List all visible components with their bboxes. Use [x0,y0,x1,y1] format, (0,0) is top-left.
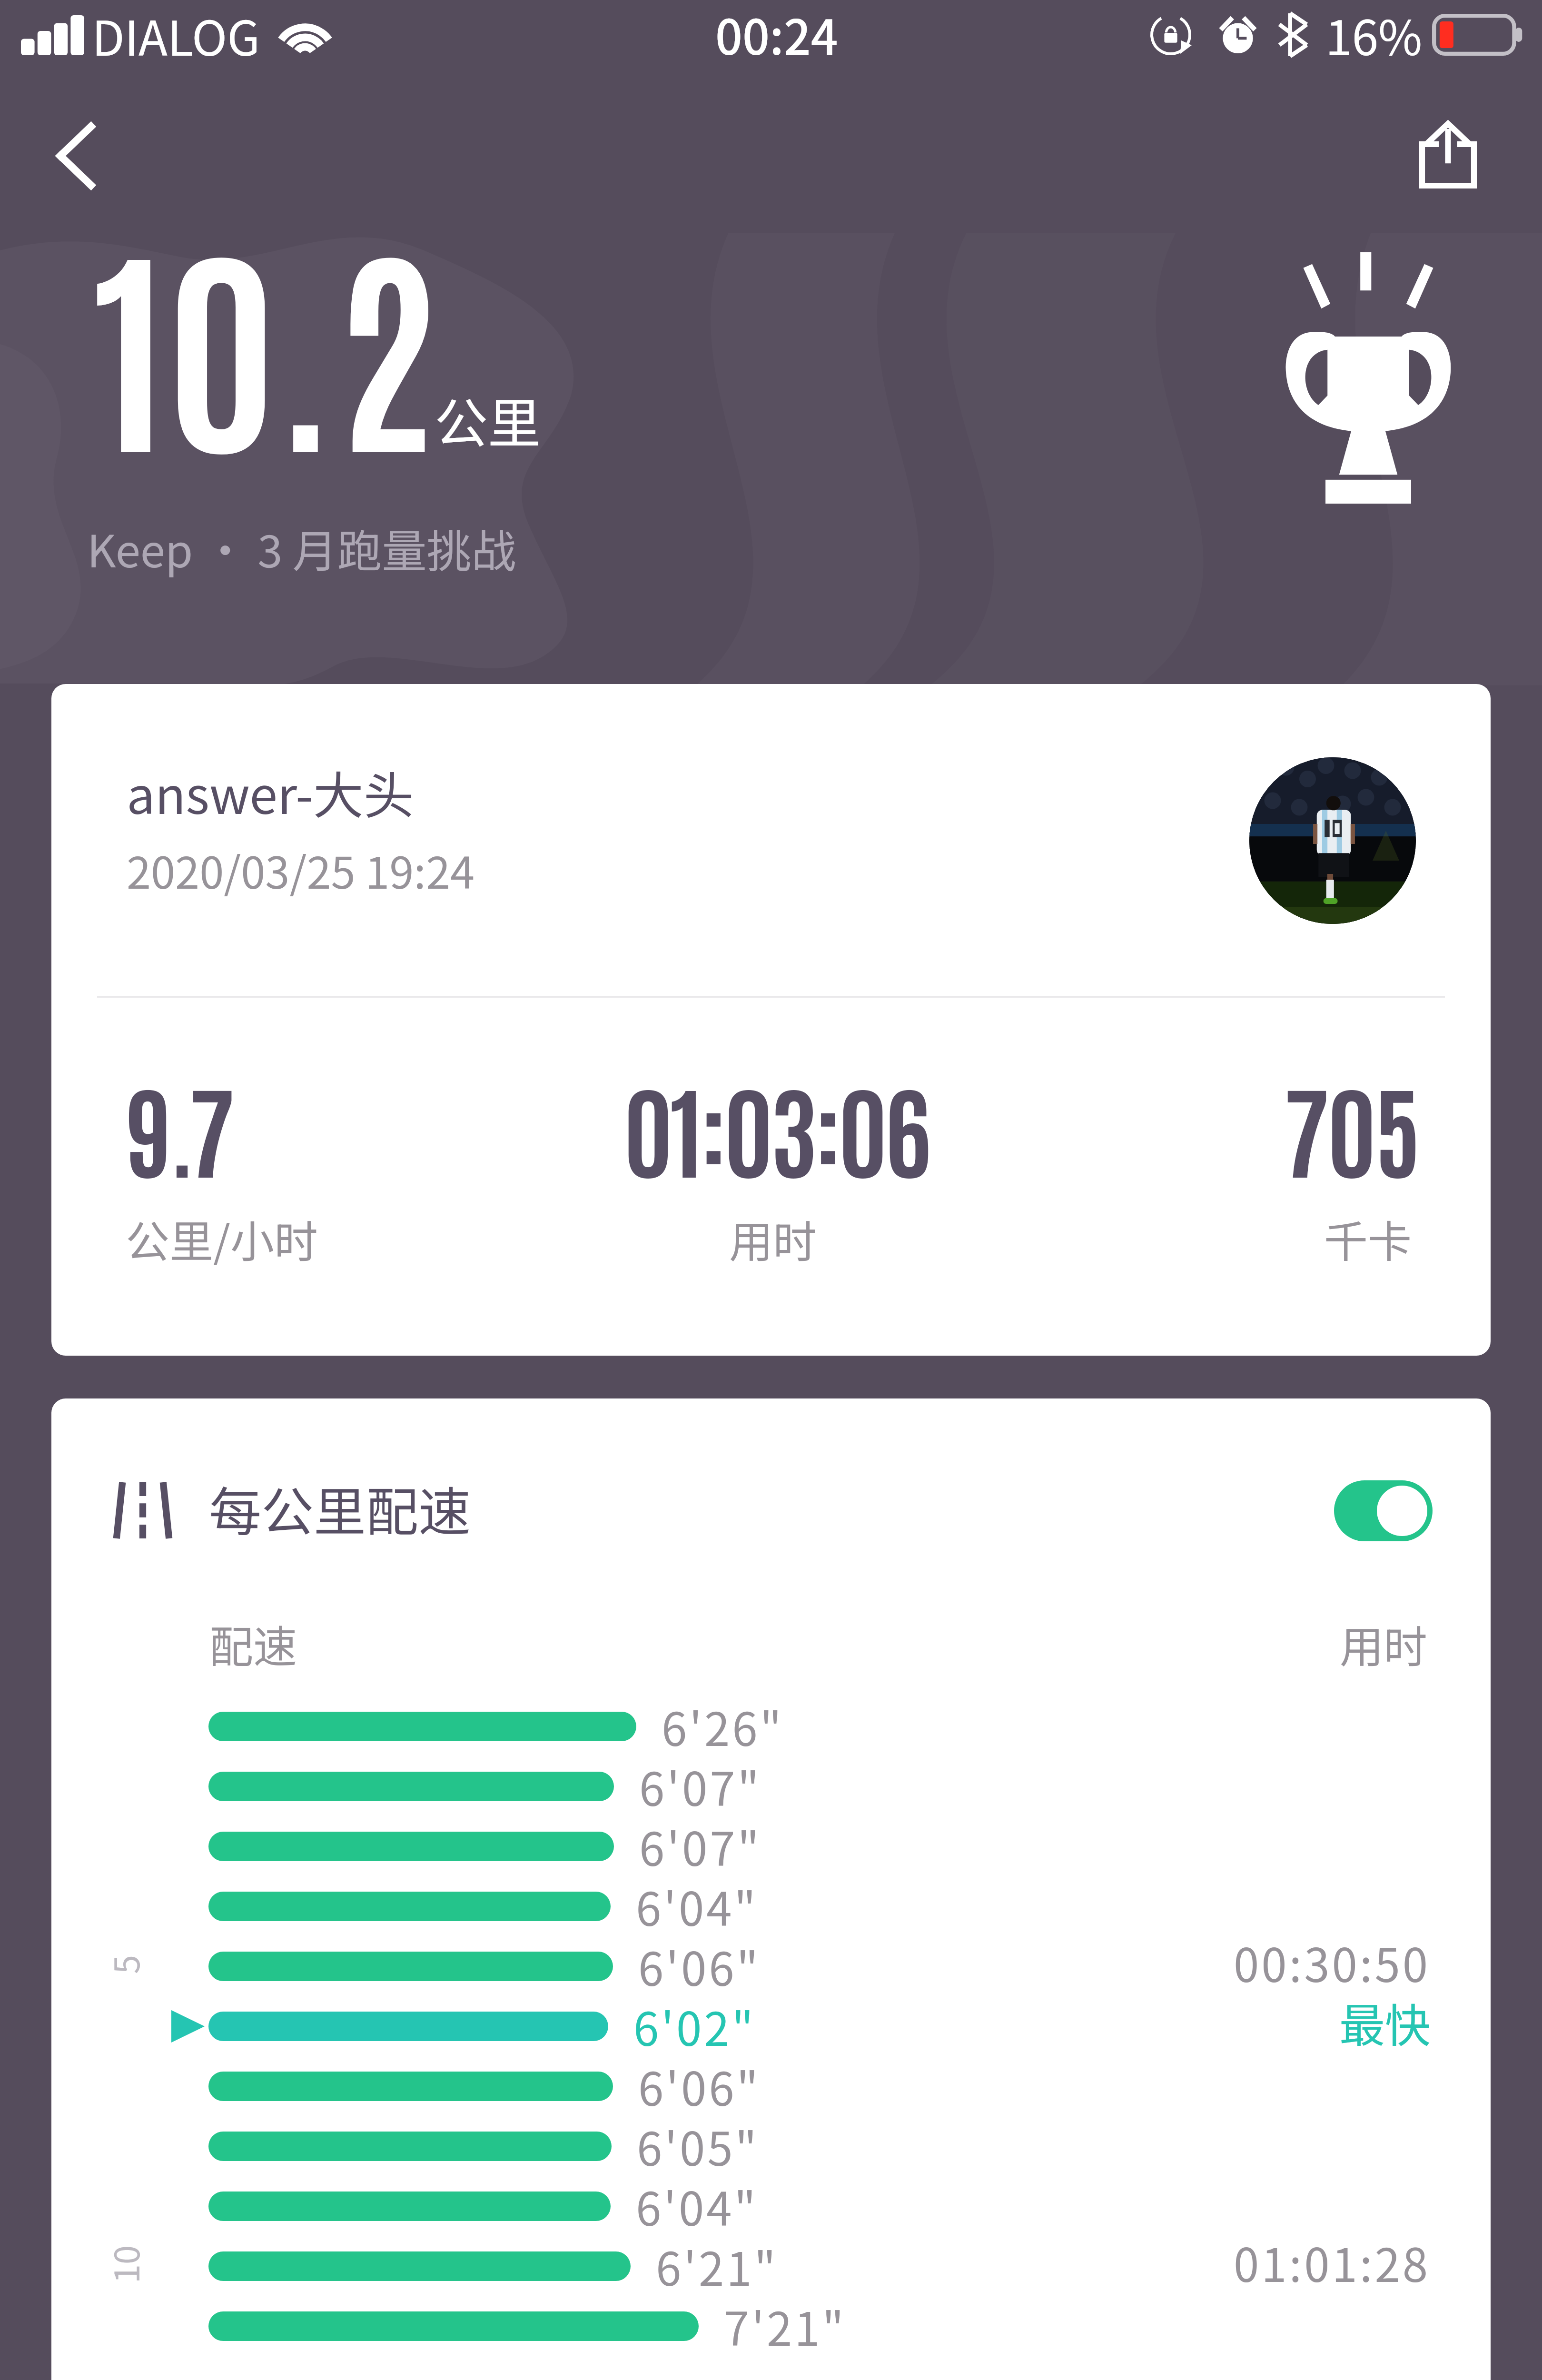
staticText: 6'04" [636,1873,759,1939]
staticText: 6'04" [636,2173,759,2239]
staticText: 公里 [435,381,541,458]
staticText: 6'05" [637,2113,760,2179]
staticText: 用时 [729,1207,817,1270]
staticText: 00:24 [715,0,838,69]
button[interactable]: 每公里配速 [51,1398,1491,2380]
staticText: 9.7 [126,1061,232,1191]
staticText: 最快 [1339,1989,1431,2055]
staticText: 01:01:28 [1234,2229,1431,2295]
staticText: 公里/小时 [126,1207,318,1270]
staticText: 5 [99,1955,149,1974]
staticText: 7'21" [724,2293,847,2359]
staticText: 01:03:06 [623,1061,929,1191]
button[interactable]: Toggle per-kilometre pace [1334,1480,1433,1541]
staticText: 6'07" [639,1753,762,1819]
staticText: 6'06" [638,1933,761,1999]
staticText: 6'21" [656,2233,779,2299]
staticText: 6'02" [633,1993,756,2059]
staticText: Keep · 3 月跑量挑战 [87,516,516,580]
staticText: 705 [1283,1061,1419,1191]
staticText: 6'26" [662,1693,784,1759]
staticText: 6'06" [638,2053,761,2119]
staticText: 每公里配速 [209,1470,471,1546]
button[interactable]: answer-大头 [51,684,1491,1356]
staticText: 2020/03/25 19:24 [127,838,475,901]
staticText: 配速 [209,1612,297,1675]
staticText: 千卡 [1324,1207,1412,1270]
staticText: 00:30:50 [1234,1929,1431,1995]
staticText: 10 [99,2245,149,2283]
staticText: answer-大头 [127,755,414,828]
button[interactable]: Share [1403,89,1504,161]
staticText: 用时 [1340,1612,1428,1675]
staticText: 10.2 [93,194,439,483]
staticText: 16% [1325,0,1423,69]
button[interactable]: Back [26,89,127,161]
staticText: DIALOG [92,0,260,69]
staticText: 6'07" [639,1813,762,1879]
